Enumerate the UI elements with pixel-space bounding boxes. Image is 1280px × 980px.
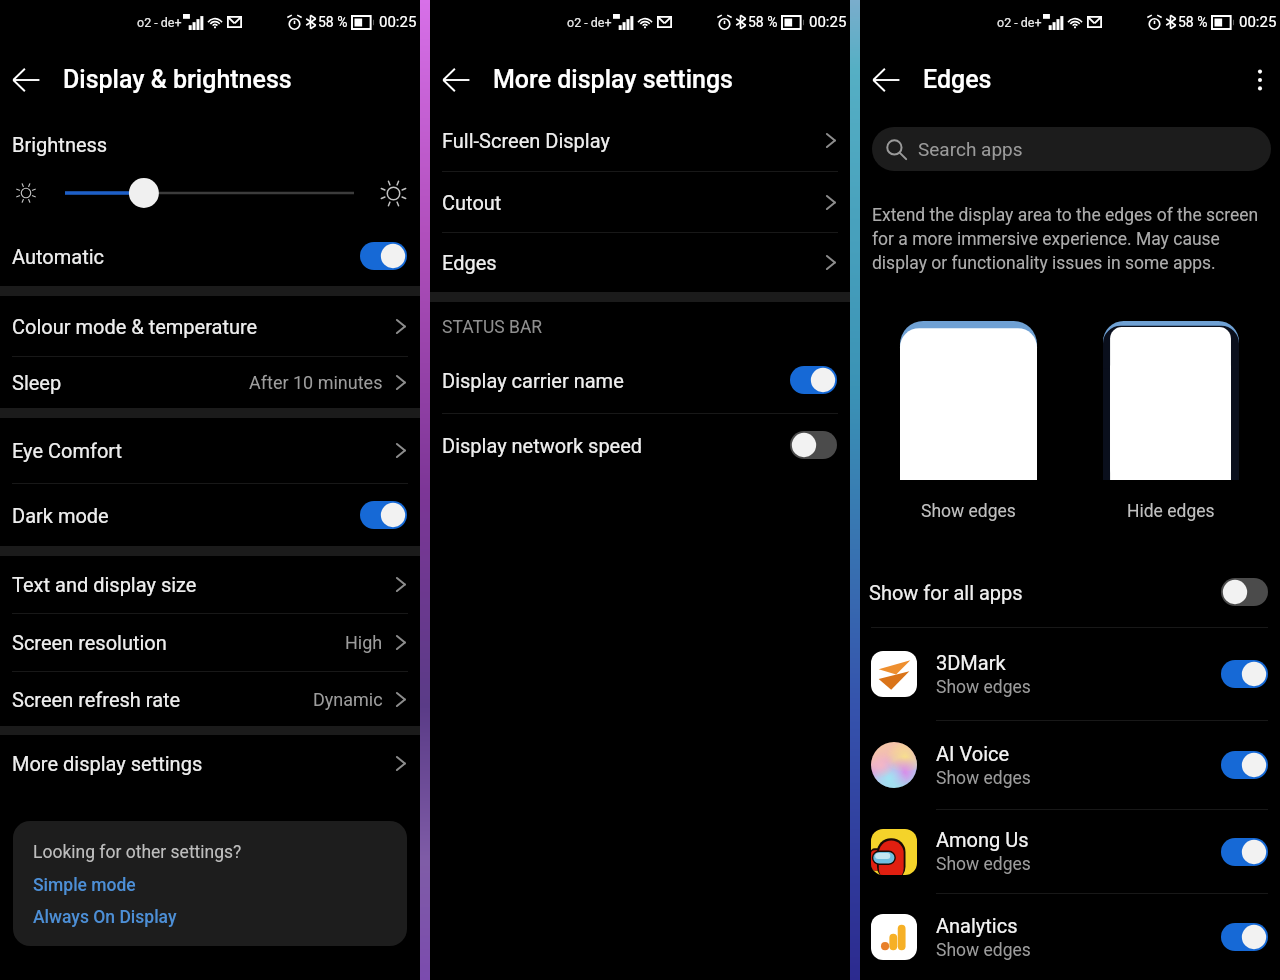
staticText: Cutout (442, 191, 502, 214)
staticText: Full-Screen Display (442, 129, 610, 152)
staticText: Looking for other settings? (33, 842, 242, 863)
button[interactable]: Eye Comfort (0, 418, 420, 483)
staticText: 58 % (318, 14, 348, 30)
staticText: Display network speed (442, 434, 643, 457)
button[interactable]: Cutout (430, 172, 850, 232)
staticText: 58 % (748, 14, 778, 30)
staticText: Show edges (936, 854, 1031, 875)
button[interactable]: Back (10, 64, 42, 96)
button[interactable]: Search apps (872, 127, 1271, 171)
staticText: Analytics (936, 914, 1018, 937)
staticText: Extend the display area to the edges of … (872, 205, 1275, 273)
staticText: o2 - de+ (567, 15, 612, 30)
staticText: Edges (923, 65, 992, 94)
staticText: Simple mode (33, 875, 136, 896)
button[interactable]: Looking for other settings? (13, 821, 407, 946)
button[interactable]: 3DMark (860, 628, 1280, 720)
button[interactable]: Full-Screen Display (430, 110, 850, 171)
staticText: Colour mode & temperature (12, 315, 258, 338)
staticText: Show edges (936, 768, 1031, 789)
staticText: Display carrier name (442, 369, 624, 392)
staticText: Screen resolution (12, 631, 167, 654)
staticText: Show edges (936, 677, 1031, 698)
staticText: After 10 minutes (249, 372, 383, 393)
staticText: Screen refresh rate (12, 688, 181, 711)
staticText: Show edges (921, 501, 1016, 522)
staticText: STATUS BAR (442, 317, 543, 338)
staticText: Text and display size (12, 573, 197, 596)
staticText: Dark mode (12, 504, 109, 527)
staticText: Display & brightness (63, 65, 292, 94)
button[interactable]: Back (870, 64, 902, 96)
button[interactable]: Edges (430, 233, 850, 292)
staticText: Among Us (936, 828, 1029, 851)
staticText: Hide edges (1127, 501, 1215, 522)
button[interactable]: Display network speed (430, 414, 850, 476)
button[interactable]: Dark mode (0, 484, 420, 546)
button[interactable]: More display settings (0, 735, 420, 792)
staticText: More display settings (12, 752, 203, 775)
button[interactable]: Text and display size (0, 556, 420, 613)
button[interactable]: Screen resolution (0, 614, 420, 671)
button[interactable]: Analytics (860, 894, 1280, 980)
staticText: 58 % (1178, 14, 1208, 30)
staticText: Brightness (12, 133, 108, 156)
staticText: Automatic (12, 245, 105, 268)
staticText: 00:25 (379, 13, 417, 31)
staticText: AI Voice (936, 742, 1010, 765)
staticText: 00:25 (1239, 13, 1277, 31)
button[interactable]: Show for all apps (860, 575, 1280, 609)
button[interactable]: Back (440, 64, 472, 96)
button[interactable]: Among Us (860, 810, 1280, 893)
staticText: Always On Display (33, 907, 177, 928)
button[interactable]: Automatic (0, 237, 420, 275)
button[interactable]: Display carrier name (430, 363, 850, 397)
button[interactable]: AI Voice (860, 721, 1280, 809)
button[interactable]: Screen refresh rate (0, 672, 420, 726)
staticText: 3DMark (936, 651, 1006, 674)
staticText: o2 - de+ (997, 15, 1042, 30)
staticText: More display settings (493, 65, 733, 94)
button[interactable]: More options (1242, 62, 1278, 98)
staticText: 00:25 (809, 13, 847, 31)
staticText: Sleep (12, 371, 62, 394)
staticText: Search apps (918, 138, 1023, 160)
staticText: Show edges (936, 940, 1031, 961)
staticText: Edges (442, 251, 497, 274)
staticText: High (345, 632, 383, 653)
staticText: Show for all apps (869, 581, 1023, 604)
staticText: Eye Comfort (12, 439, 123, 462)
staticText: o2 - de+ (137, 15, 182, 30)
button[interactable]: Colour mode & temperature (0, 296, 420, 356)
button[interactable]: Sleep (0, 357, 420, 408)
staticText: Dynamic (313, 689, 383, 710)
